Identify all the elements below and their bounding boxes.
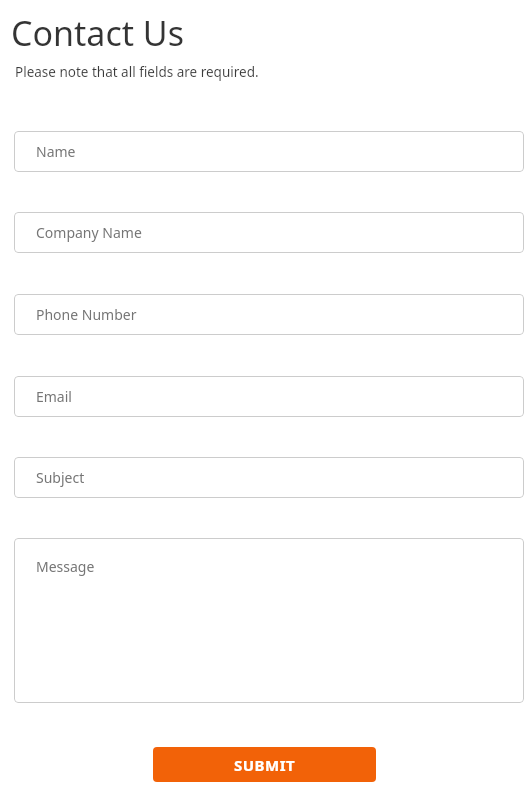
button[interactable]: Name [14,131,524,172]
button[interactable]: Company Name [14,212,524,253]
staticText: Subject [36,468,85,487]
staticText: SUBMIT [234,755,296,775]
button[interactable]: SUBMIT [153,747,376,782]
staticText: Phone Number [36,305,137,324]
button[interactable]: Message [14,538,524,703]
button[interactable]: Subject [14,457,524,498]
staticText: Company Name [36,223,142,242]
staticText: Contact Us [11,10,184,56]
staticText: Name [36,142,76,161]
button[interactable]: Email [14,376,524,417]
staticText: Message [36,557,95,576]
staticText: Please note that all fields are required… [15,63,259,81]
staticText: Email [36,387,72,406]
button[interactable]: Phone Number [14,294,524,335]
